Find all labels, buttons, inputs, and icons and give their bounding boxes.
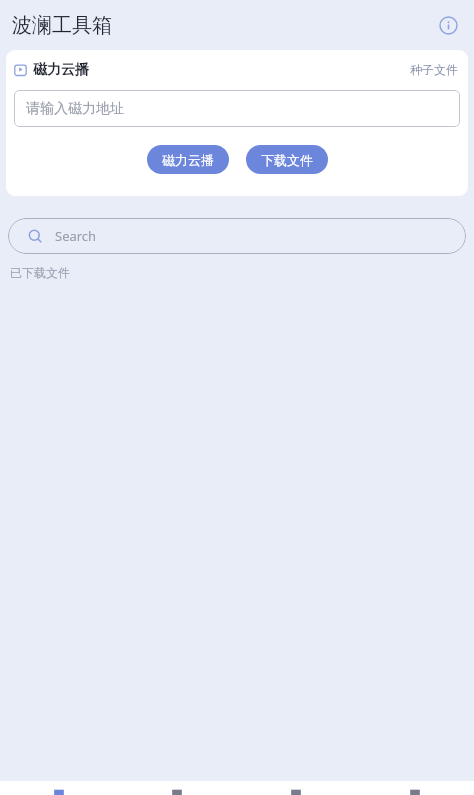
staticText: 种子文件 [410,62,458,77]
button[interactable]: 请输入磁力地址 [14,90,460,127]
button[interactable]: Info [432,9,464,41]
staticText: 请输入磁力地址 [26,100,124,118]
staticText: 已下载文件 [10,265,70,280]
button[interactable]: Me [355,781,474,795]
button[interactable]: Home [0,781,118,795]
button[interactable]: 磁力云播 [147,145,229,174]
staticText: 波澜工具箱 [12,13,112,38]
staticText: Search [55,227,97,245]
staticText: 下载文件 [261,152,313,168]
button[interactable]: Tools [118,781,236,795]
button[interactable]: Files [236,781,355,795]
staticText: 磁力云播 [162,152,214,168]
button[interactable]: 种子文件 [408,60,460,79]
button[interactable]: Search [8,218,466,254]
staticText: 磁力云播 [33,61,89,79]
button[interactable]: 下载文件 [246,145,328,174]
